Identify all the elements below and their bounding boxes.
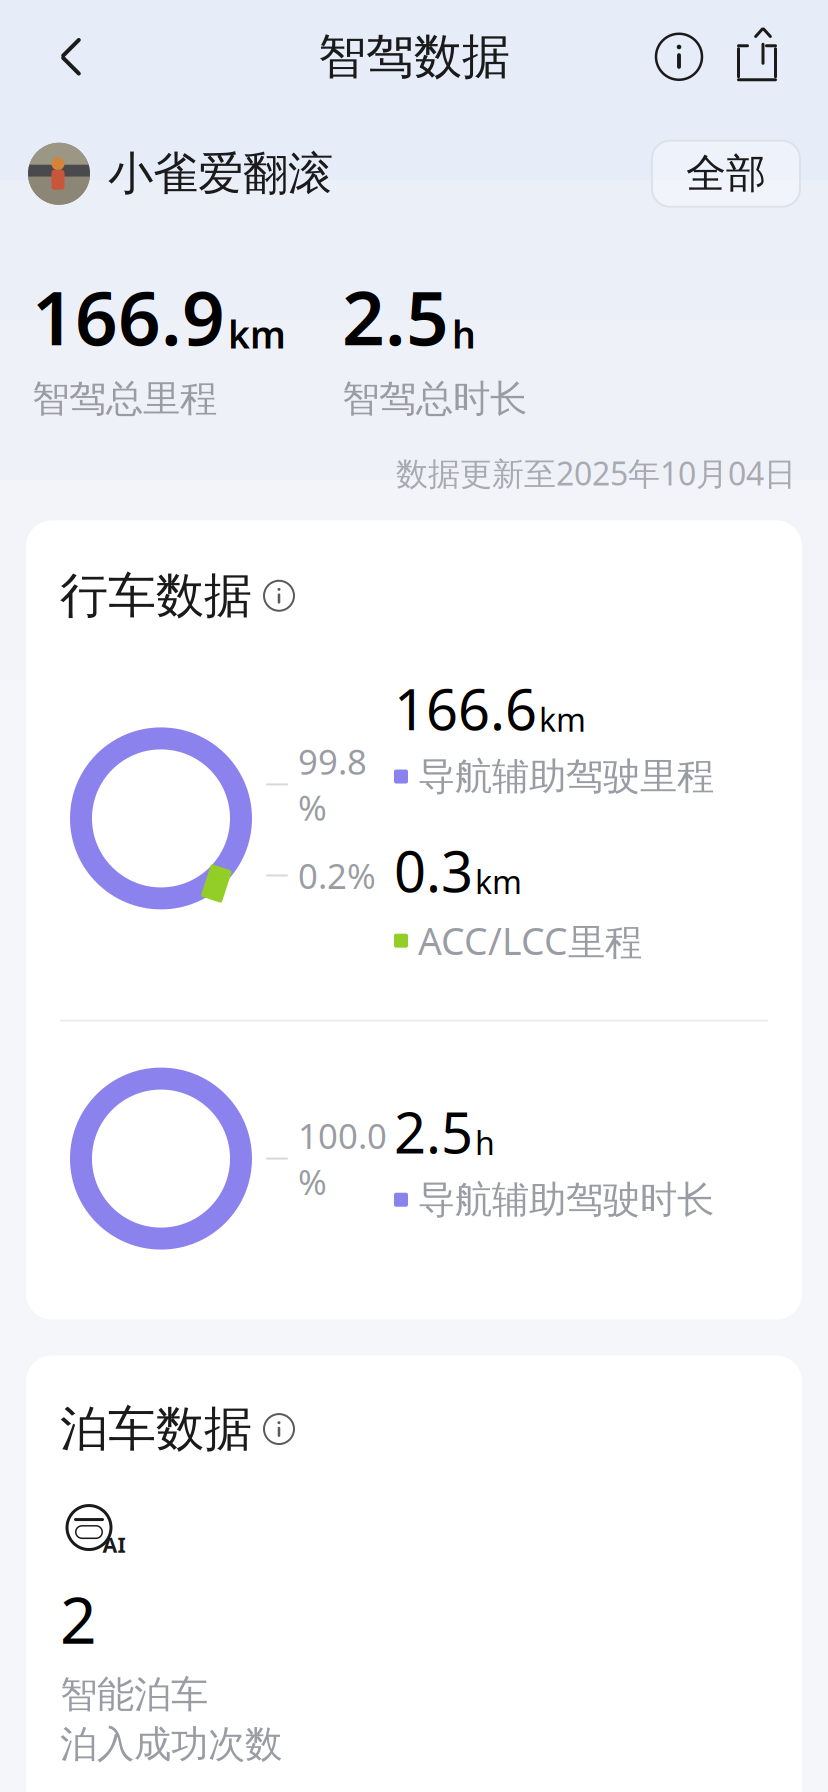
- staticText: km: [475, 860, 522, 903]
- button[interactable]: Information: [648, 26, 710, 88]
- button[interactable]: About 行车数据: [264, 581, 294, 611]
- staticText: km: [539, 698, 586, 741]
- staticText: 全部: [686, 149, 766, 198]
- button[interactable]: About 泊车数据: [264, 1414, 294, 1444]
- staticText: 小雀爱翻滚: [108, 146, 333, 202]
- staticText: 0.3: [394, 833, 473, 908]
- staticText: 2.5: [394, 1094, 473, 1169]
- staticText: 0.2%: [298, 852, 376, 898]
- staticText: AI: [102, 1530, 125, 1559]
- button[interactable]: Back: [40, 26, 102, 88]
- staticText: 泊车数据: [60, 1400, 252, 1459]
- staticText: 166.9: [32, 267, 225, 366]
- staticText: 导航辅助驾驶里程: [418, 754, 714, 799]
- staticText: h: [452, 309, 476, 359]
- staticText: ACC/LCC里程: [418, 916, 642, 966]
- staticText: h: [475, 1121, 495, 1164]
- staticText: 99.8%: [298, 738, 367, 830]
- staticText: 2.5: [342, 267, 449, 366]
- staticText: 数据更新至2025年10月04日: [396, 452, 796, 494]
- staticText: 智驾数据: [318, 27, 510, 86]
- staticText: 166.6: [394, 671, 537, 746]
- button[interactable]: 小雀爱翻滚: [28, 143, 333, 205]
- staticText: 行车数据: [60, 566, 252, 625]
- staticText: 100.0%: [298, 1112, 387, 1205]
- button[interactable]: 全部: [652, 141, 800, 207]
- staticText: 智能泊车: [60, 1671, 208, 1717]
- button[interactable]: Share: [726, 26, 788, 88]
- staticText: 智驾总里程: [32, 376, 217, 422]
- staticText: 智驾总时长: [342, 376, 527, 422]
- staticText: 泊入成功次数: [60, 1721, 282, 1767]
- staticText: 2: [60, 1576, 97, 1661]
- staticText: km: [228, 309, 286, 359]
- staticText: 导航辅助驾驶时长: [418, 1177, 714, 1223]
